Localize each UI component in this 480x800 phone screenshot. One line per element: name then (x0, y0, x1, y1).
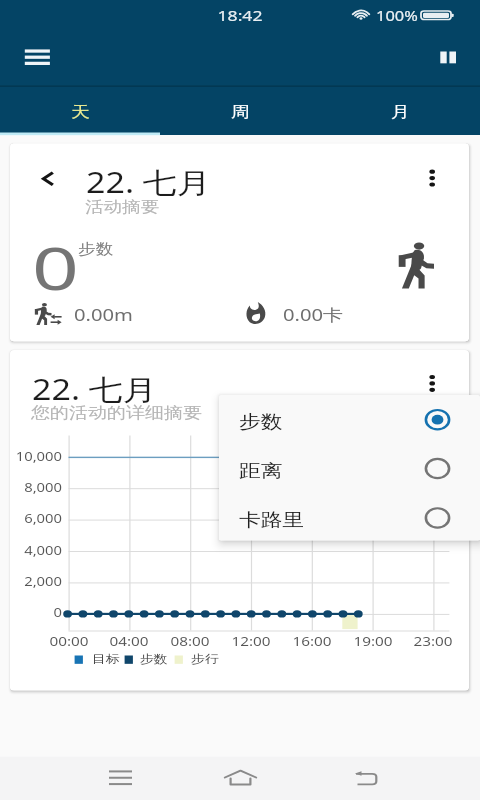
staticText: 步数 (78, 240, 113, 258)
button[interactable]: Open navigation drawer (14, 38, 60, 77)
button[interactable]: Pause (425, 38, 471, 77)
staticText: 00:00 (34, 632, 104, 652)
staticText: 天 (71, 102, 90, 122)
button[interactable]: Recent apps (90, 761, 150, 797)
staticText: 22. 七月 (86, 162, 211, 201)
staticText: 0 (0, 604, 62, 624)
button[interactable]: 步数 (219, 395, 480, 444)
staticText: 100% (376, 6, 418, 24)
staticText: 4,000 (0, 542, 62, 562)
staticText: 活动摘要 (85, 197, 159, 216)
staticText: 16:00 (277, 632, 347, 652)
button[interactable]: Back (336, 761, 396, 797)
staticText: 目标 (92, 652, 120, 667)
button[interactable]: 周 (160, 87, 320, 136)
button[interactable]: Back (28, 160, 70, 197)
staticText: 8,000 (0, 478, 62, 498)
staticText: 19:00 (338, 632, 408, 652)
button[interactable]: More options (414, 365, 454, 402)
button[interactable]: 卡路里 (219, 493, 480, 542)
staticText: 2,000 (0, 572, 62, 592)
button[interactable]: 月 (320, 87, 480, 136)
staticText: 10,000 (0, 447, 62, 467)
staticText: 0 (32, 227, 80, 307)
staticText: 08:00 (155, 632, 225, 652)
staticText: 步行 (191, 652, 219, 667)
staticText: 23:00 (398, 632, 468, 652)
button[interactable]: 距离 (219, 444, 480, 493)
staticText: 18:42 (180, 5, 300, 28)
staticText: 22. 七月 (32, 370, 157, 408)
staticText: 12:00 (216, 632, 286, 652)
staticText: 月 (391, 102, 410, 122)
staticText: 步数 (239, 410, 283, 432)
staticText: 04:00 (94, 632, 164, 652)
button[interactable]: Home (210, 761, 270, 797)
button[interactable]: 天 (0, 87, 160, 136)
staticText: 6,000 (0, 510, 62, 530)
button[interactable] (10, 143, 469, 342)
staticText: 您的活动的详细摘要 (31, 403, 202, 423)
button[interactable] (10, 350, 469, 691)
staticText: 卡路里 (239, 508, 305, 531)
staticText: 步数 (140, 652, 168, 667)
staticText: 0.00m (74, 302, 133, 326)
staticText: 周 (231, 102, 250, 122)
staticText: 0.00卡 (283, 302, 344, 326)
staticText: 距离 (239, 459, 283, 482)
button[interactable]: More options (414, 160, 454, 197)
